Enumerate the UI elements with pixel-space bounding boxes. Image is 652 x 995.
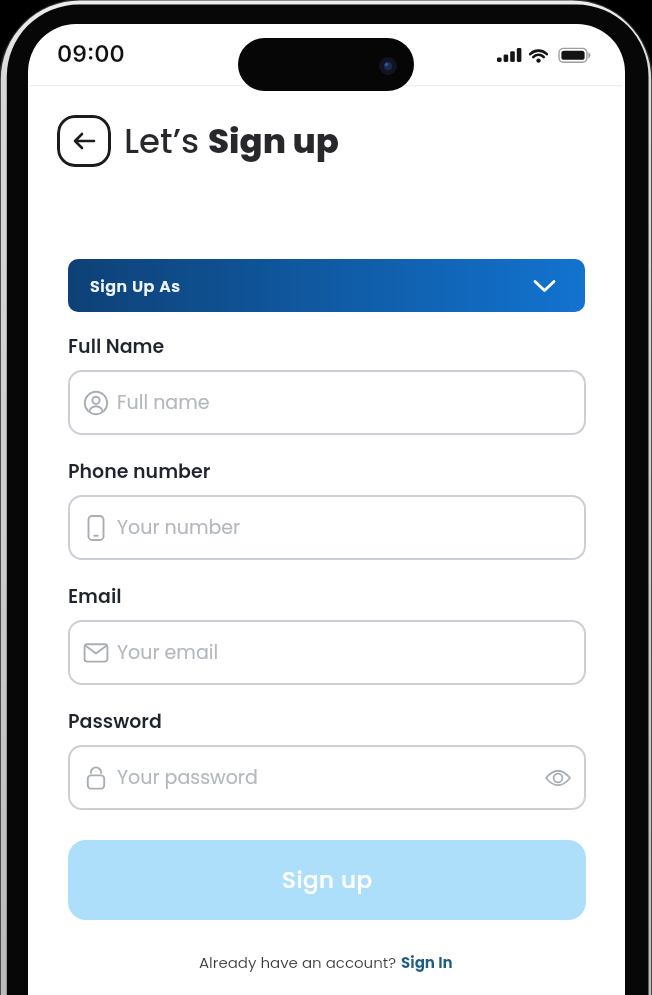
button[interactable]: [57, 115, 111, 167]
button[interactable]: Sign In: [401, 952, 453, 973]
staticText: Already have an account?: [199, 952, 401, 973]
button[interactable]: Sign Up As: [68, 259, 585, 312]
staticText: Your number: [117, 514, 241, 541]
staticText: Full Name: [68, 333, 165, 359]
button[interactable]: Your email: [68, 620, 586, 685]
staticText: Phone number: [68, 458, 211, 484]
staticText: Email: [68, 583, 122, 609]
staticText: Password: [68, 708, 162, 734]
staticText: Your email: [117, 639, 219, 666]
button[interactable]: Your number: [68, 495, 586, 560]
staticText: Let’s: [124, 117, 208, 165]
staticText: 09:00: [57, 40, 125, 68]
button[interactable]: Full name: [68, 370, 586, 435]
staticText: Full name: [117, 389, 210, 416]
staticText: Sign up: [282, 864, 373, 896]
staticText: Sign up: [208, 117, 339, 165]
staticText: Your password: [117, 764, 258, 791]
staticText: Sign Up As: [90, 275, 181, 297]
button[interactable]: Your password: [68, 745, 586, 810]
button[interactable]: Sign up: [68, 840, 586, 920]
